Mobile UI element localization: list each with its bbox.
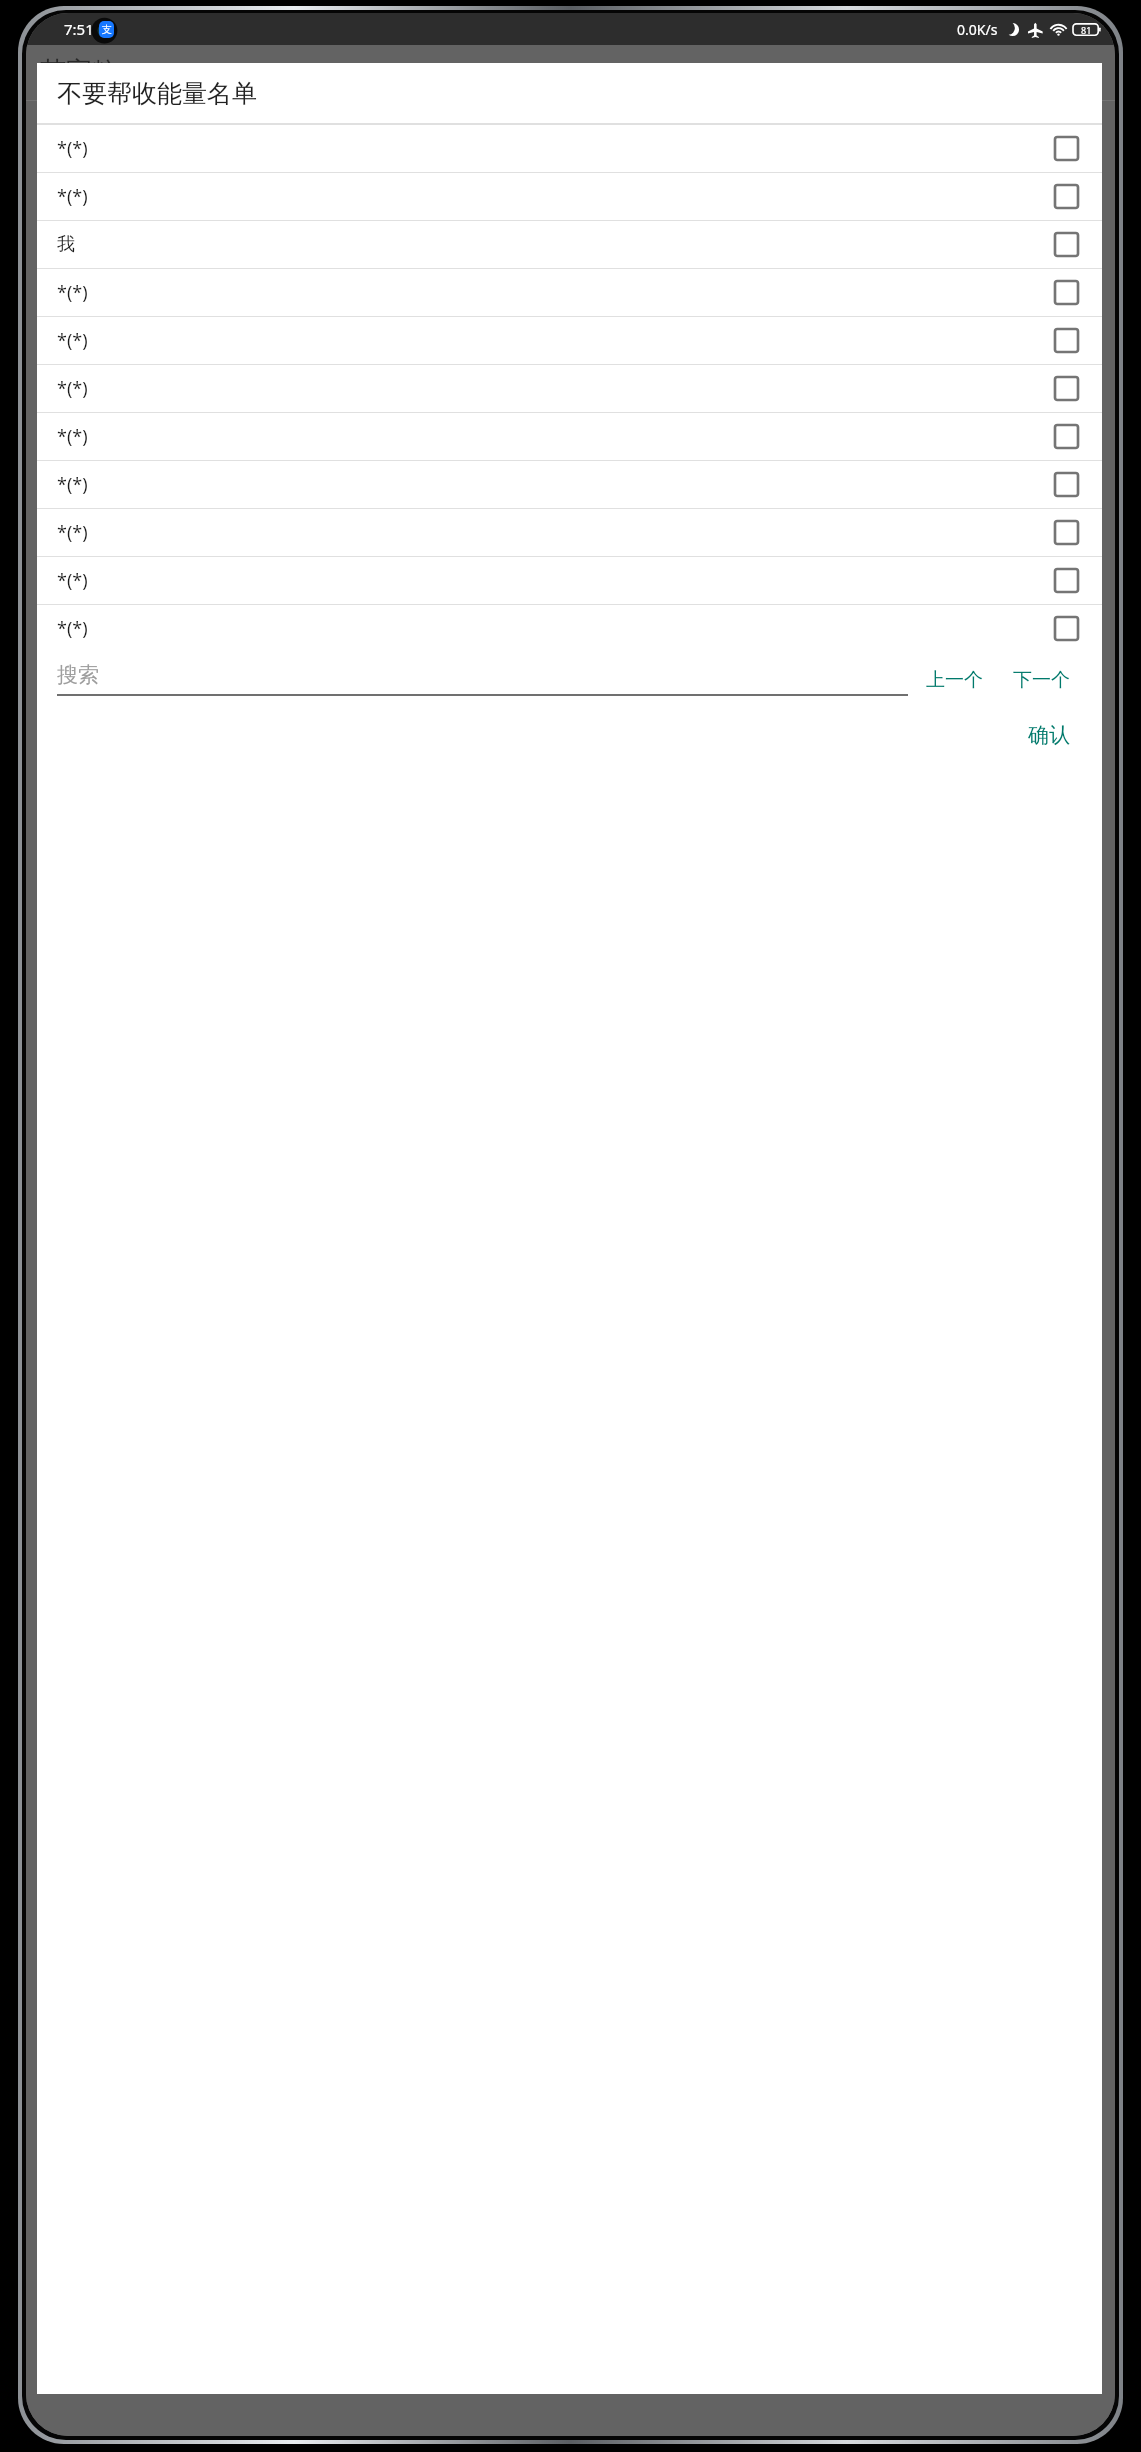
button[interactable]: *(*): [37, 269, 1102, 316]
staticText: 芝宝粒: [40, 55, 118, 88]
staticText: 0.0K/s: [957, 20, 998, 39]
other: Select *(*): [1055, 281, 1078, 304]
staticText: *(*): [57, 280, 1055, 305]
button[interactable]: *(*): [37, 509, 1102, 556]
other: Select *(*): [1055, 617, 1078, 640]
staticText: *(*): [57, 568, 1055, 593]
other: Select *(*): [1055, 185, 1078, 208]
staticText: *(*): [57, 184, 1055, 209]
staticText: 搜索: [57, 662, 99, 688]
button[interactable]: 我: [37, 221, 1102, 268]
staticText: *(*): [57, 616, 1055, 641]
staticText: 上一个: [926, 668, 983, 692]
other: Select *(*): [1055, 521, 1078, 544]
other: Select *(*): [1055, 569, 1078, 592]
other: Select *(*): [1055, 377, 1078, 400]
staticText: *(*): [57, 328, 1055, 353]
staticText: 好友列表: [40, 555, 108, 576]
button[interactable]: *(*): [37, 125, 1102, 172]
other: Select *(*): [1055, 329, 1078, 352]
staticText: 循环运行: [65, 427, 133, 448]
staticText: *(*): [57, 136, 1055, 161]
staticText: 搜索收取: [40, 139, 108, 160]
button[interactable]: 上一个: [918, 664, 991, 696]
staticText: 绿色能量: [40, 107, 108, 128]
staticText: 不要帮收能量名单: [57, 78, 257, 109]
button[interactable]: *(*): [37, 365, 1102, 412]
staticText: 六六大顺: [40, 459, 108, 480]
other: Select 我: [1055, 233, 1078, 256]
button[interactable]: 确认: [1020, 718, 1078, 752]
staticText: 收取好友: [40, 203, 108, 224]
staticText: 确认: [1028, 722, 1070, 748]
button[interactable]: *(*): [37, 557, 1102, 604]
staticText: *(*): [57, 424, 1055, 449]
staticText: *(*): [57, 472, 1055, 497]
other: Select *(*): [1055, 425, 1078, 448]
staticText: 81: [1081, 24, 1092, 36]
staticText: 适配分辨: [40, 363, 108, 384]
staticText: 六六运行: [40, 491, 108, 512]
button[interactable]: *(*): [37, 413, 1102, 460]
staticText: 适配机型: [40, 331, 108, 352]
staticText: 适配版本: [40, 395, 108, 416]
other: Select *(*): [1055, 137, 1078, 160]
staticText: 收取自己: [40, 171, 108, 192]
staticText: 定时模式: [65, 523, 133, 544]
staticText: 我: [57, 233, 1055, 256]
staticText: 支: [102, 23, 112, 36]
staticText: 阳光普照: [40, 267, 108, 288]
staticText: 浇水模式: [65, 299, 133, 320]
staticText: 7:51: [64, 19, 94, 39]
button[interactable]: *(*): [37, 173, 1102, 220]
staticText: 下一个: [1013, 668, 1070, 692]
button[interactable]: *(*): [37, 605, 1102, 652]
staticText: *(*): [57, 376, 1055, 401]
button[interactable]: 下一个: [1005, 664, 1078, 696]
button[interactable]: *(*): [37, 461, 1102, 508]
button[interactable]: 搜索: [57, 662, 908, 696]
button[interactable]: *(*): [37, 317, 1102, 364]
staticText: *(*): [57, 520, 1055, 545]
other: Select *(*): [1055, 473, 1078, 496]
staticText: 自动开启: [65, 235, 133, 256]
